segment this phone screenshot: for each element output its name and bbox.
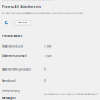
- button[interactable]: Stop processing: [15, 20, 31, 25]
- staticText: attachments/files processed: [2, 68, 31, 71]
- staticText: Now processing: [2, 89, 20, 92]
- staticText: Attachments processed: [2, 54, 27, 58]
- staticText: 0: [44, 68, 46, 71]
- staticText: 1,948: [44, 54, 52, 58]
- staticText: Process All Attachments: [2, 5, 40, 9]
- staticText: Process Status: [2, 34, 22, 38]
- staticText: Attachments found: [2, 45, 23, 48]
- staticText: If your site is large, this could take a…: [2, 12, 83, 14]
- staticText: Media Library attachment processing and …: [2, 0, 54, 1]
- staticText: Errors found: [2, 79, 16, 83]
- staticText: Messages: [2, 96, 15, 100]
- staticText: Stop processing: [18, 22, 27, 23]
- staticText: wp-content/uploads/2011/09/currently-pro…: [44, 93, 98, 95]
- staticText: 1,948: [44, 45, 52, 48]
- staticText: 0: [44, 79, 46, 83]
